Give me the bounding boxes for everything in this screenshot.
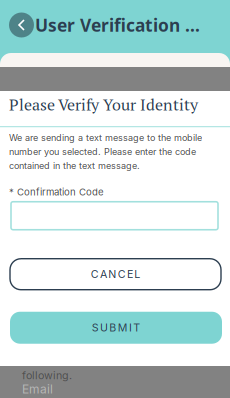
- staticText: Please Verify Your Identity: [9, 94, 198, 115]
- staticText: Email: [22, 382, 53, 396]
- staticText: SUBMIT: [92, 321, 140, 334]
- staticText: User Verification ...: [35, 13, 200, 36]
- button[interactable]: CANCEL: [0, 259, 230, 290]
- staticText: * Confirmation Code: [9, 186, 104, 198]
- staticText: following.: [22, 369, 72, 382]
- button[interactable]: SUBMIT: [0, 312, 230, 344]
- staticText: We are sending a text message to the mob…: [9, 132, 202, 171]
- button[interactable]: Back: [9, 12, 34, 37]
- staticText: CANCEL: [91, 268, 140, 281]
